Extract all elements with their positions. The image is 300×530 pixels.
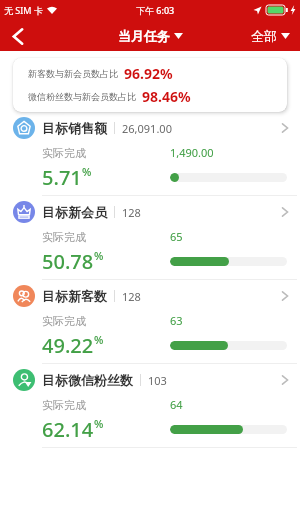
staticText: 当月任务 [118,28,170,44]
staticText: 实际完成 [42,314,86,328]
staticText: 目标新会员 [42,204,107,220]
staticText: 128 [122,289,141,304]
staticText: 128 [122,205,141,220]
staticText: 65 [170,229,183,244]
staticText: 新客数与新会员数占比 [28,68,118,79]
staticText: 50.78 [42,248,94,275]
staticText: 49.22 [42,332,94,359]
staticText: 63 [170,313,183,328]
staticText: % [94,416,104,431]
staticText: 62.14 [42,416,94,443]
button[interactable]: 目标销售额 [0,112,300,196]
staticText: % [94,332,104,347]
staticText: 微信粉丝数与新会员数占比 [28,91,136,102]
button[interactable]: 当月任务 [118,28,183,44]
staticText: % [82,164,92,179]
staticText: 无 SIM 卡 [4,4,43,16]
staticText: 64 [170,397,183,412]
staticText: 目标新客数 [42,288,107,304]
staticText: 96.92% [124,64,173,83]
staticText: 目标销售额 [42,120,107,136]
staticText: 26,091.00 [122,121,172,136]
staticText: 1,490.00 [170,145,214,160]
staticText: 全部 [251,28,277,44]
staticText: 下午 6:03 [136,4,175,16]
button[interactable]: 目标新客数 [0,280,300,364]
staticText: 实际完成 [42,146,86,160]
staticText: 目标微信粉丝数 [42,372,133,388]
staticText: 实际完成 [42,230,86,244]
staticText: % [94,248,104,263]
button[interactable]: 目标新会员 [0,196,300,280]
staticText: 5.71 [42,164,82,191]
staticText: 98.46% [142,87,191,106]
staticText: 实际完成 [42,398,86,412]
button[interactable] [4,22,32,50]
button[interactable]: 目标微信粉丝数 [0,364,300,448]
button[interactable]: 全部 [251,28,290,44]
staticText: 103 [148,373,167,388]
